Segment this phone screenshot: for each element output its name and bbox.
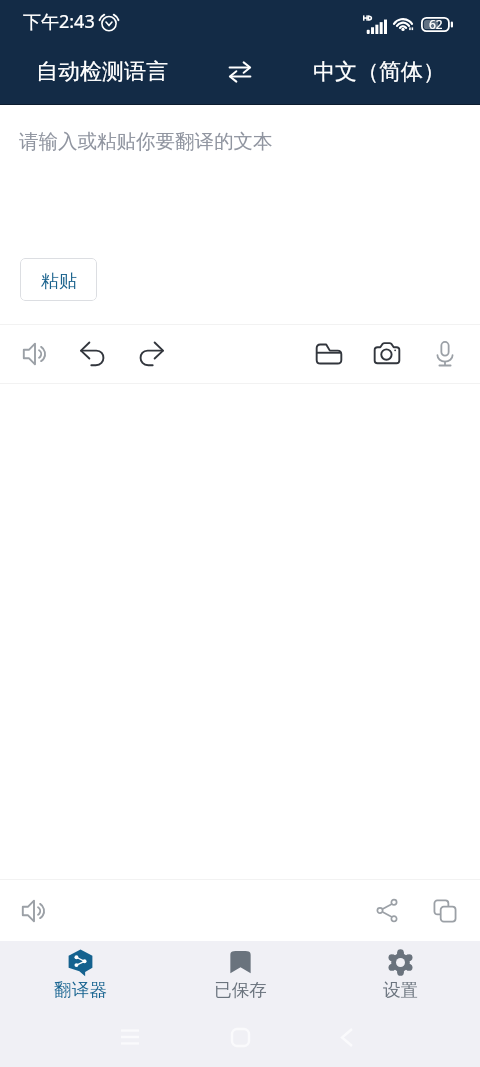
staticText: 中文（简体） <box>313 58 445 86</box>
button[interactable]: 粘贴 <box>20 258 97 301</box>
staticText: 翻译器 <box>54 979 107 1001</box>
staticText: 已保存 <box>214 979 267 1001</box>
button[interactable]: Redo <box>122 325 180 383</box>
button[interactable]: Copy <box>416 880 474 941</box>
staticText: 请输入或粘贴你要翻译的文本 <box>19 129 273 154</box>
staticText: 下午2:43 <box>23 9 95 34</box>
button[interactable]: 中文（简体） <box>277 43 480 104</box>
button[interactable]: Listen <box>6 325 64 383</box>
button[interactable]: 自动检测语言 <box>0 43 203 104</box>
staticText: 粘贴 <box>41 270 77 293</box>
staticText: 自动检测语言 <box>36 58 168 86</box>
staticText: 62 <box>429 16 443 32</box>
button[interactable]: 翻译器 <box>0 941 160 1007</box>
button[interactable]: Listen to translation <box>5 880 63 941</box>
button[interactable]: Documents <box>300 325 358 383</box>
staticText: 设置 <box>383 979 418 1001</box>
button[interactable]: Share <box>358 880 416 941</box>
button[interactable]: 设置 <box>320 941 480 1007</box>
button[interactable]: Voice input <box>416 325 474 383</box>
button[interactable]: Undo <box>64 325 122 383</box>
button[interactable]: Camera <box>358 325 416 383</box>
button[interactable]: 已保存 <box>160 941 320 1007</box>
button[interactable]: Swap languages <box>203 43 277 104</box>
